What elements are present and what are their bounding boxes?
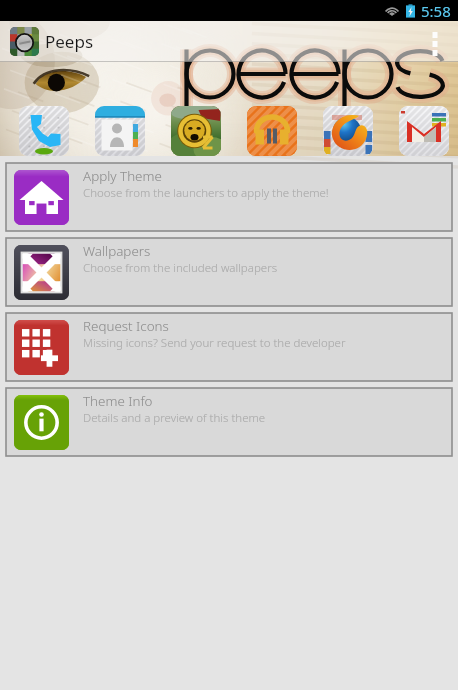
staticText: 5:58 <box>421 1 451 21</box>
staticText: Wallpapers <box>83 242 151 260</box>
staticText: Details and a preview of this theme <box>83 410 266 426</box>
button[interactable]: Request Icons <box>6 313 452 381</box>
staticText: Choose from the included wallpapers <box>83 260 278 276</box>
staticText: Peeps <box>45 30 94 53</box>
staticText: Apply Theme <box>83 167 162 185</box>
button[interactable]: Apply Theme <box>6 163 452 231</box>
staticText: Choose from the launchers to apply the t… <box>83 185 329 201</box>
staticText: Missing icons? Send your request to the … <box>83 335 346 351</box>
staticText: Theme Info <box>83 392 153 410</box>
staticText: Request Icons <box>83 317 169 335</box>
button[interactable]: More options <box>424 28 446 54</box>
button[interactable]: Wallpapers <box>6 238 452 306</box>
button[interactable]: Theme Info <box>6 388 452 456</box>
